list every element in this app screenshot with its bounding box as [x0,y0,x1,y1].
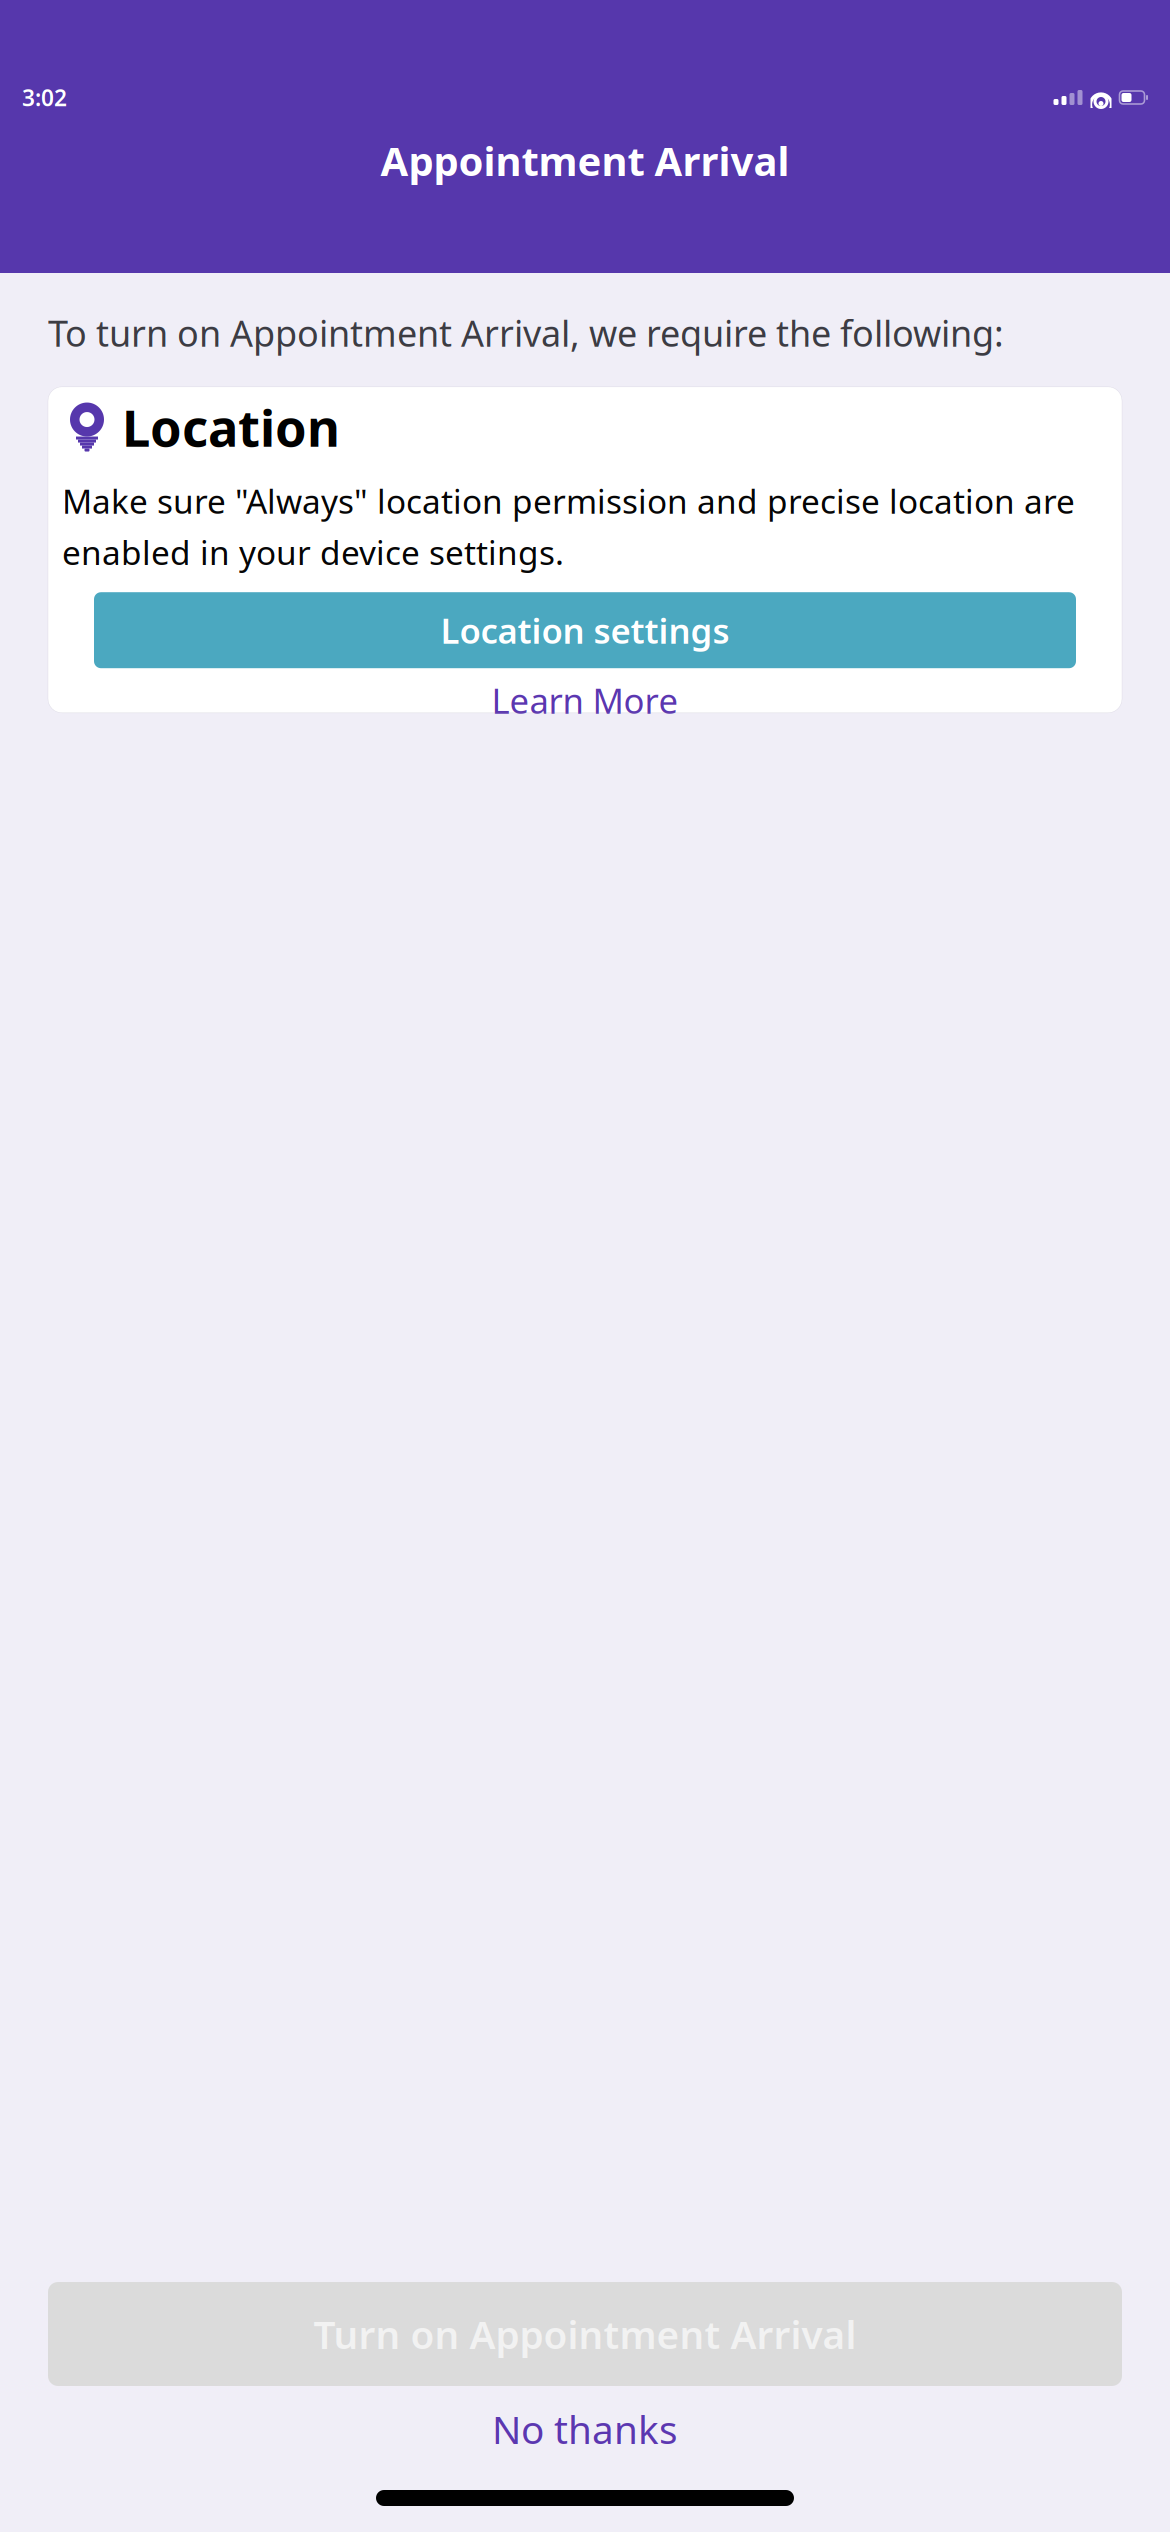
button[interactable]: Learn More [48,674,1122,726]
staticText: 3:02 [22,82,67,112]
button[interactable]: Turn on Appointment Arrival [48,2282,1122,2386]
staticText: Location [122,393,340,461]
staticText: Make sure "Always" location permission a… [62,479,1075,574]
button[interactable]: No thanks [48,2386,1122,2472]
staticText: Learn More [491,677,678,723]
staticText: No thanks [492,2403,678,2455]
staticText: To turn on Appointment Arrival, we requi… [48,309,1004,357]
button[interactable]: Location settings [94,592,1076,668]
staticText: Appointment Arrival [380,134,789,187]
staticText: Location settings [440,607,729,653]
staticText: Turn on Appointment Arrival [313,2308,856,2360]
